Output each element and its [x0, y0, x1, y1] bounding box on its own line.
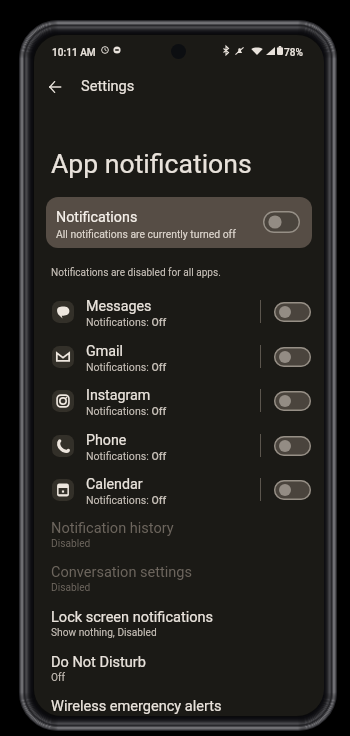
staticText: Lock screen notifications — [51, 609, 214, 626]
staticText: Wireless emergency alerts — [51, 698, 222, 715]
staticText: All notifications are currently turned o… — [56, 228, 236, 240]
button[interactable]: Phone — [34, 430, 324, 474]
staticText: Notifications are disabled for all apps. — [51, 267, 221, 279]
staticText: Notifications: Off — [86, 494, 167, 506]
staticText: Notification history — [51, 520, 174, 537]
staticText: Notifications — [56, 209, 138, 226]
staticText: Notifications: Off — [86, 405, 167, 417]
staticText: App notifications — [51, 148, 252, 179]
button[interactable]: Calendar — [34, 474, 324, 518]
button[interactable]: Do Not Disturb — [34, 648, 324, 692]
staticText: 78% — [284, 47, 303, 59]
staticText: Do Not Disturb — [51, 654, 146, 671]
staticText: Phone — [86, 432, 127, 449]
button[interactable]: Messages — [34, 296, 324, 340]
staticText: Show nothing, Disabled — [51, 627, 157, 639]
button[interactable]: Gmail — [34, 341, 324, 385]
button[interactable]: Notification history — [34, 514, 324, 558]
staticText: Instagram — [86, 387, 151, 404]
button[interactable]: Instagram — [34, 385, 324, 429]
staticText: Off — [51, 672, 66, 684]
staticText: Conversation settings — [51, 564, 193, 581]
staticText: Calendar — [86, 476, 143, 493]
staticText: Messages — [86, 298, 152, 315]
staticText: Disabled — [51, 582, 91, 594]
button[interactable]: Lock screen notifications — [34, 603, 324, 647]
button[interactable]: Conversation settings — [34, 558, 324, 602]
staticText: 10:11 AM — [52, 47, 96, 59]
staticText: Settings — [81, 77, 135, 94]
button[interactable]: Wireless emergency alerts — [34, 692, 324, 716]
staticText: Notifications: Off — [86, 316, 167, 328]
staticText: Notifications: Off — [86, 450, 167, 462]
button[interactable]: Back — [41, 73, 69, 101]
button[interactable]: Notifications — [46, 197, 312, 248]
staticText: Notifications: Off — [86, 361, 167, 373]
staticText: Gmail — [86, 343, 123, 360]
staticText: Disabled — [51, 538, 91, 550]
